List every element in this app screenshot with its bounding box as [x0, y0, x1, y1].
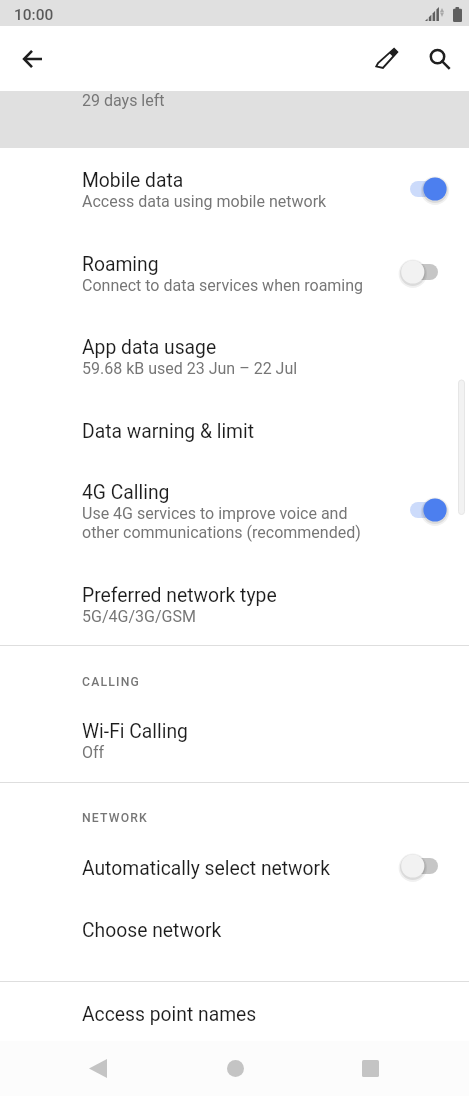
- button[interactable]: Automatically select network: [0, 825, 469, 899]
- button[interactable]: Choose network: [0, 899, 469, 981]
- button[interactable]: Search: [419, 38, 460, 79]
- button[interactable]: Mobile data: [0, 148, 469, 231]
- button[interactable]: Wi-Fi Calling: [0, 689, 469, 782]
- staticText: 4G Calling: [82, 481, 170, 504]
- staticText: 59.68 kB used 23 Jun – 22 Jul: [82, 359, 298, 378]
- button[interactable]: Automatically select network: [396, 842, 456, 890]
- staticText: Preferred network type: [82, 584, 277, 607]
- button[interactable]: Back: [12, 38, 53, 79]
- staticText: Connect to data services when roaming: [82, 276, 364, 295]
- staticText: Data warning & limit: [82, 420, 255, 443]
- staticText: Off: [82, 743, 105, 762]
- staticText: Automatically select network: [82, 857, 330, 880]
- button[interactable]: Data warning & limit: [0, 398, 469, 463]
- staticText: Mobile data: [82, 169, 184, 192]
- staticText: NETWORK: [82, 811, 148, 825]
- button[interactable]: Roaming: [0, 231, 469, 315]
- staticText: Access data using mobile network: [82, 192, 327, 211]
- staticText: Roaming: [82, 253, 159, 276]
- staticText: CALLING: [82, 675, 141, 689]
- button[interactable]: Home: [211, 1044, 259, 1092]
- button[interactable]: Mobile data: [396, 165, 456, 213]
- staticText: Wi-Fi Calling: [82, 720, 188, 743]
- staticText: other communications (recommended): [82, 523, 361, 542]
- button[interactable]: Preferred network type: [0, 562, 469, 645]
- staticText: 29 days left: [82, 91, 165, 110]
- staticText: Choose network: [82, 919, 222, 942]
- staticText: 10:00: [14, 6, 54, 24]
- button[interactable]: Recents: [346, 1044, 394, 1092]
- button[interactable]: Edit: [366, 38, 407, 79]
- staticText: Use 4G services to improve voice and: [82, 504, 348, 523]
- button[interactable]: Back: [74, 1044, 122, 1092]
- button[interactable]: 4G Calling: [0, 463, 469, 562]
- button[interactable]: 4G Calling: [396, 486, 456, 534]
- staticText: App data usage: [82, 336, 217, 359]
- button[interactable]: Roaming: [396, 248, 456, 296]
- button[interactable]: Access point names: [0, 982, 469, 1040]
- button[interactable]: App data usage: [0, 315, 469, 398]
- staticText: Access point names: [82, 1003, 257, 1026]
- staticText: 5G/4G/3G/GSM: [82, 607, 196, 626]
